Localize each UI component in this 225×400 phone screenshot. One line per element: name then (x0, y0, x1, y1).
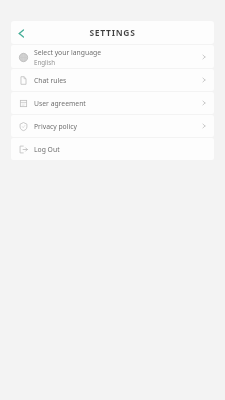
button[interactable]: Privacy policy (11, 115, 214, 137)
staticText: Select your language (34, 48, 101, 57)
button[interactable]: User agreement (11, 92, 214, 114)
button[interactable]: Select your language (11, 45, 214, 68)
staticText: Log Out (34, 145, 60, 154)
staticText: User agreement (34, 99, 86, 108)
button[interactable]: Log Out (11, 138, 214, 160)
staticText: Chat rules (34, 76, 67, 85)
button[interactable]: Back (11, 23, 31, 43)
staticText: Privacy policy (34, 122, 77, 131)
staticText: English (34, 58, 56, 66)
staticText: SETTINGS (89, 27, 136, 39)
button[interactable]: Chat rules (11, 69, 214, 91)
